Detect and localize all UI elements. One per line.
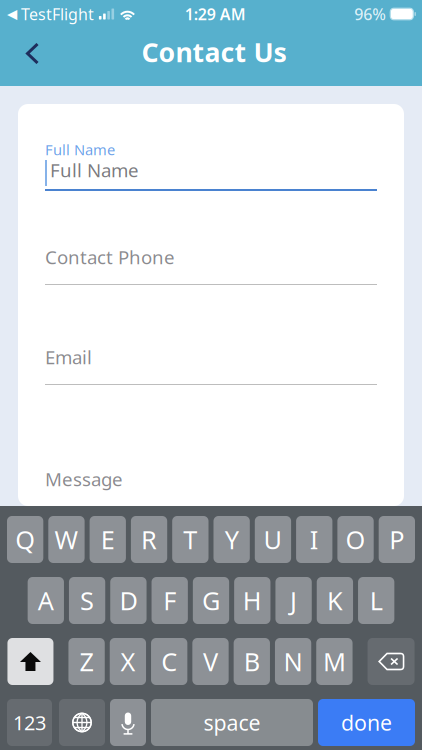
staticText: G [202,584,220,617]
button[interactable]: A [28,577,64,624]
staticText: S [80,584,94,617]
staticText: P [389,523,404,556]
staticText: done [341,708,392,737]
button[interactable]: 123 [7,699,52,746]
button[interactable]: Email [45,346,377,385]
button[interactable]: D [110,577,146,624]
button[interactable]: Z [68,638,105,685]
button[interactable]: H [234,577,270,624]
staticText: L [370,584,383,617]
button[interactable]: Q [7,516,43,563]
staticText: T [183,523,197,556]
button[interactable]: G [193,577,229,624]
staticText: I [310,523,319,556]
button[interactable]: O [337,516,374,563]
staticText: R [141,523,157,556]
staticText: A [38,584,54,617]
button[interactable]: Message [45,468,377,507]
staticText: N [284,645,303,678]
staticText: X [120,645,135,678]
staticText: O [345,523,365,556]
button[interactable]: Next keyboard [59,699,105,746]
button[interactable]: B [234,638,270,685]
button[interactable]: Delete [368,638,415,685]
staticText: Q [15,523,35,556]
button[interactable]: K [317,577,353,624]
button[interactable]: X [110,638,146,685]
staticText: V [203,645,218,678]
staticText: U [263,523,282,556]
button[interactable]: N [275,638,311,685]
button[interactable]: C [151,638,187,685]
button[interactable]: space [151,699,313,746]
button[interactable]: V [192,638,229,685]
staticText: ◀ [7,6,17,21]
staticText: Full Name [50,158,139,182]
button[interactable]: W [48,516,85,563]
button[interactable]: P [379,516,415,563]
staticText: W [54,523,78,556]
button[interactable]: Y [213,516,250,563]
staticText: Contact Us [141,34,286,70]
button[interactable]: I [296,516,332,563]
staticText: Z [80,645,94,678]
staticText: TestFlight [21,3,94,25]
button[interactable]: F [151,577,188,624]
staticText: Contact Phone [45,245,175,269]
button[interactable]: E [90,516,126,563]
staticText: J [290,584,297,617]
button[interactable]: Contact Phone [45,246,377,285]
button[interactable]: Full Name [45,140,377,191]
button[interactable]: T [172,516,208,563]
staticText: H [243,584,262,617]
button[interactable]: S [69,577,105,624]
staticText: 1:29 AM [185,3,246,25]
button[interactable]: M [316,638,352,685]
button[interactable]: Dictation [110,699,146,746]
staticText: E [101,523,115,556]
staticText: Full Name [45,140,115,159]
staticText: B [244,645,260,678]
button[interactable]: L [358,577,394,624]
staticText: 123 [13,709,46,736]
button[interactable]: R [131,516,167,563]
staticText: Message [45,467,123,491]
staticText: 96% [354,3,386,25]
button[interactable]: Shift [7,638,53,685]
staticText: K [327,584,343,617]
staticText: C [161,645,177,678]
staticText: M [323,645,346,678]
button[interactable]: Back [0,27,44,71]
button[interactable]: J [275,577,312,624]
staticText: space [203,708,260,737]
staticText: Y [225,523,239,556]
button[interactable]: U [255,516,291,563]
staticText: Email [45,345,92,369]
staticText: D [119,584,137,617]
staticText: F [163,584,176,617]
button[interactable]: done [318,699,415,746]
